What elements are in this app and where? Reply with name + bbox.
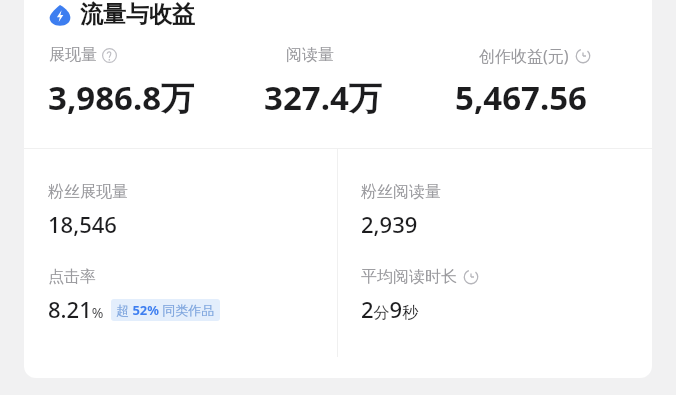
staticText: 平均阅读时长: [361, 267, 457, 287]
staticText: 超 52% 同类作品: [116, 301, 215, 319]
staticText: 327.4万: [264, 75, 382, 120]
button[interactable]: 超 52% 同类作品: [116, 301, 215, 319]
staticText: 2分9秒: [361, 294, 419, 324]
staticText: 阅读量: [286, 45, 334, 65]
button[interactable]: 粉丝阅读量: [361, 182, 441, 239]
button[interactable]: 平均阅读时长: [361, 267, 479, 324]
button[interactable]: 粉丝展现量: [48, 182, 128, 239]
other: 阅读时长说明: [463, 269, 479, 285]
staticText: 创作收益(元): [479, 45, 569, 67]
staticText: 展现量: [49, 45, 97, 65]
staticText: 8.21%: [48, 294, 104, 324]
staticText: 5,467.56: [455, 75, 587, 120]
button[interactable]: 阅读量: [286, 45, 334, 65]
staticText: 点击率: [48, 267, 96, 287]
button[interactable]: 展现量: [49, 45, 259, 65]
button[interactable]: 点击率: [48, 267, 220, 324]
staticText: 3,986.8万: [48, 75, 195, 120]
button[interactable]: 流量与收益: [49, 0, 652, 29]
staticText: 2,939: [361, 209, 418, 239]
staticText: 18,546: [48, 209, 117, 239]
button[interactable]: 创作收益(元): [479, 45, 591, 67]
staticText: 粉丝展现量: [48, 182, 128, 202]
other: 历史收益: [575, 48, 591, 64]
staticText: 粉丝阅读量: [361, 182, 441, 202]
staticText: 流量与收益: [80, 0, 195, 29]
other: 说明: [102, 48, 117, 63]
